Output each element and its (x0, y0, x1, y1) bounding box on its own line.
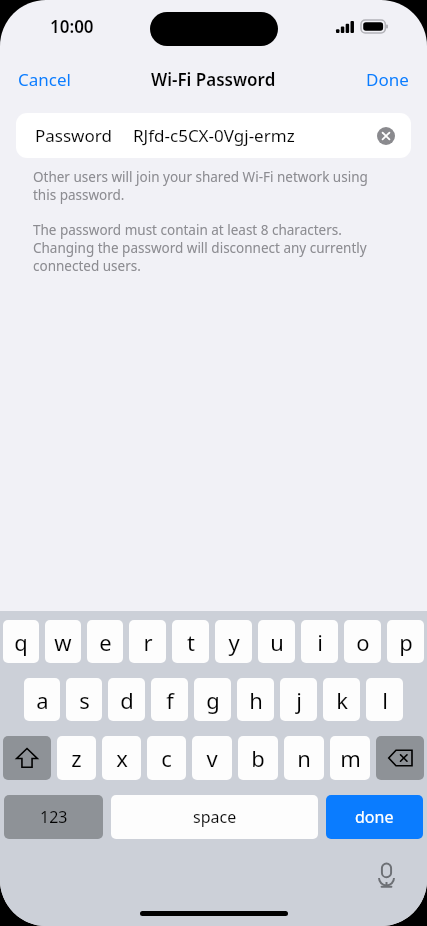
staticText: s (79, 685, 90, 715)
button[interactable]: d (108, 678, 145, 721)
button[interactable]: f (151, 678, 188, 721)
button[interactable]: k (323, 678, 360, 721)
button[interactable]: u (258, 620, 295, 663)
button[interactable]: p (387, 620, 424, 663)
button[interactable]: space (111, 795, 318, 839)
button[interactable]: Delete (376, 736, 424, 780)
staticText: h (249, 685, 263, 715)
staticText: i (317, 627, 323, 657)
button[interactable]: m (330, 736, 370, 780)
staticText: k (336, 685, 348, 715)
staticText: m (340, 743, 361, 773)
button[interactable]: b (238, 736, 278, 780)
staticText: f (166, 685, 174, 715)
button[interactable]: h (237, 678, 274, 721)
staticText: Wi-Fi Password (151, 68, 276, 91)
button[interactable]: t (172, 620, 209, 663)
button[interactable]: l (366, 678, 403, 721)
button[interactable]: j (280, 678, 317, 721)
staticText: r (143, 627, 153, 657)
staticText: b (251, 743, 265, 773)
staticText: Done (366, 68, 409, 91)
staticText: space (193, 806, 237, 828)
staticText: The password must contain at least 8 cha… (33, 221, 394, 275)
staticText: o (356, 627, 370, 657)
button[interactable]: i (301, 620, 338, 663)
button[interactable]: a (24, 678, 60, 721)
button[interactable]: g (194, 678, 231, 721)
button[interactable]: s (66, 678, 102, 721)
staticText: 123 (40, 806, 68, 828)
button[interactable]: n (284, 736, 324, 780)
staticText: n (297, 743, 311, 773)
button[interactable]: o (344, 620, 381, 663)
staticText: e (99, 627, 112, 657)
button[interactable]: c (147, 736, 186, 780)
staticText: a (36, 685, 49, 715)
button[interactable]: v (192, 736, 232, 780)
staticText: Cancel (18, 68, 71, 91)
button[interactable]: 123 (4, 795, 103, 839)
staticText: x (116, 743, 128, 773)
button[interactable]: q (3, 620, 39, 663)
staticText: g (206, 685, 220, 715)
button[interactable]: e (87, 620, 123, 663)
button[interactable]: Dictate (367, 856, 405, 894)
button[interactable]: w (45, 620, 81, 663)
button[interactable]: Password (16, 113, 411, 158)
button[interactable]: Done (348, 59, 427, 100)
staticText: u (270, 627, 284, 657)
staticText: Other users will join your shared Wi-Fi … (33, 168, 394, 204)
staticText: v (206, 743, 218, 773)
button[interactable]: y (215, 620, 252, 663)
staticText: w (54, 627, 72, 657)
staticText: p (399, 627, 413, 657)
button[interactable]: r (129, 620, 166, 663)
button[interactable]: Shift (3, 736, 51, 780)
staticText: l (382, 685, 388, 715)
staticText: Password (35, 124, 112, 147)
button[interactable]: z (57, 736, 96, 780)
staticText: j (296, 685, 302, 715)
button[interactable]: x (102, 736, 141, 780)
staticText: q (14, 627, 28, 657)
button[interactable]: done (326, 795, 423, 839)
button[interactable]: Cancel (0, 59, 89, 100)
staticText: t (187, 627, 195, 657)
staticText: done (355, 806, 394, 828)
staticText: c (161, 743, 172, 773)
staticText: d (120, 685, 134, 715)
staticText: z (71, 743, 82, 773)
button[interactable]: Clear text (373, 123, 399, 149)
staticText: y (228, 627, 240, 657)
staticText: RJfd-c5CX-0Vgj-ermz (133, 124, 295, 147)
staticText: 10:00 (50, 15, 94, 38)
